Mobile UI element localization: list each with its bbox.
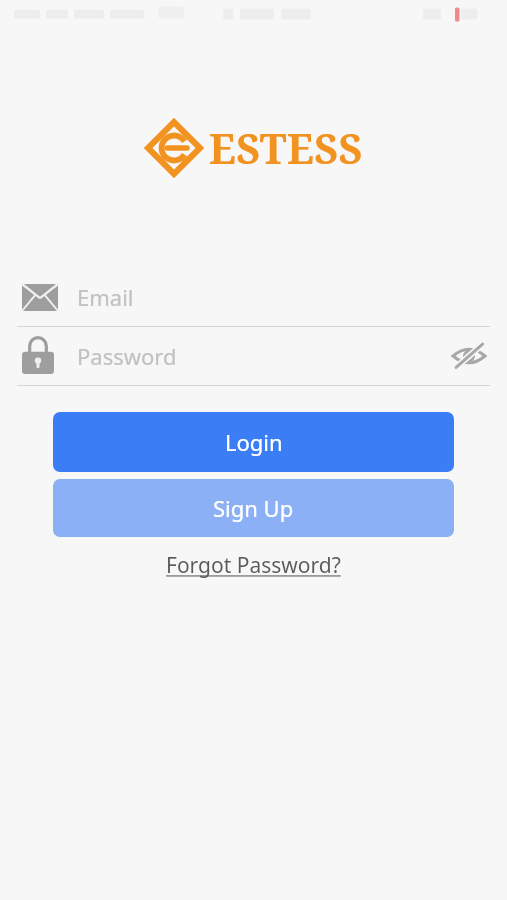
button[interactable]: Login (53, 412, 454, 472)
staticText: Forgot Password? (166, 551, 341, 580)
button[interactable]: Show password (448, 335, 490, 377)
staticText: ESTESS (209, 120, 363, 176)
staticText: Password (77, 341, 448, 371)
button[interactable]: Sign Up (53, 479, 454, 537)
staticText: Sign Up (213, 493, 294, 523)
button[interactable]: Email (0, 268, 507, 326)
button[interactable]: Forgot Password? (160, 549, 347, 582)
staticText: Email (77, 282, 134, 312)
button[interactable]: Password (0, 327, 507, 385)
staticText: Login (225, 427, 283, 457)
